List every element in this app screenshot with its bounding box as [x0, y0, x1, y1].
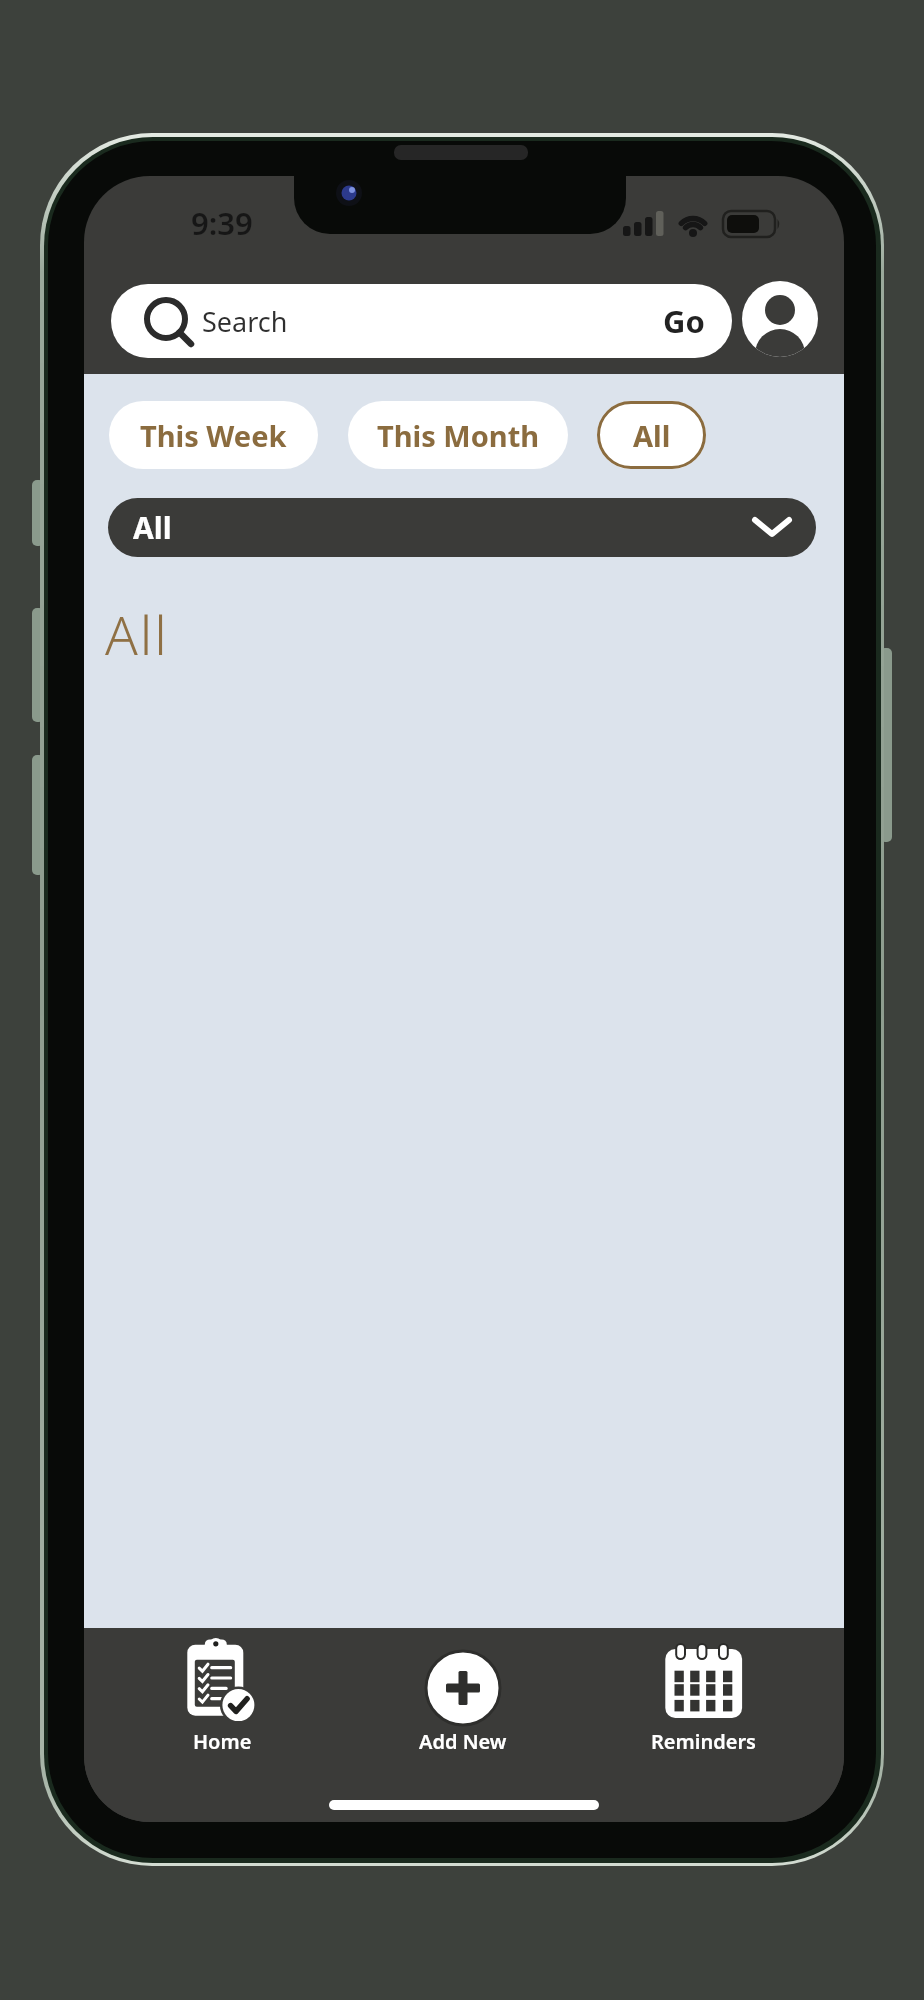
staticText: Go: [663, 300, 705, 342]
button[interactable]: Add New: [383, 1638, 543, 1758]
button[interactable]: Search: [111, 284, 732, 358]
button[interactable]: Reminders: [623, 1638, 783, 1758]
staticText: 9:39: [191, 202, 253, 242]
button[interactable]: All: [597, 401, 706, 469]
staticText: Search: [202, 303, 288, 340]
button[interactable]: Home: [142, 1638, 302, 1758]
staticText: All: [633, 416, 671, 455]
staticText: This Month: [377, 416, 540, 455]
staticText: This Week: [140, 416, 287, 455]
button[interactable]: This Week: [109, 401, 318, 469]
button[interactable]: This Month: [348, 401, 568, 469]
staticText: Add New: [419, 1728, 507, 1755]
button[interactable]: [742, 281, 818, 357]
staticText: All: [133, 507, 172, 548]
button[interactable]: All: [108, 498, 816, 557]
staticText: Reminders: [651, 1728, 756, 1755]
staticText: Home: [193, 1728, 252, 1755]
staticText: All: [105, 597, 169, 671]
